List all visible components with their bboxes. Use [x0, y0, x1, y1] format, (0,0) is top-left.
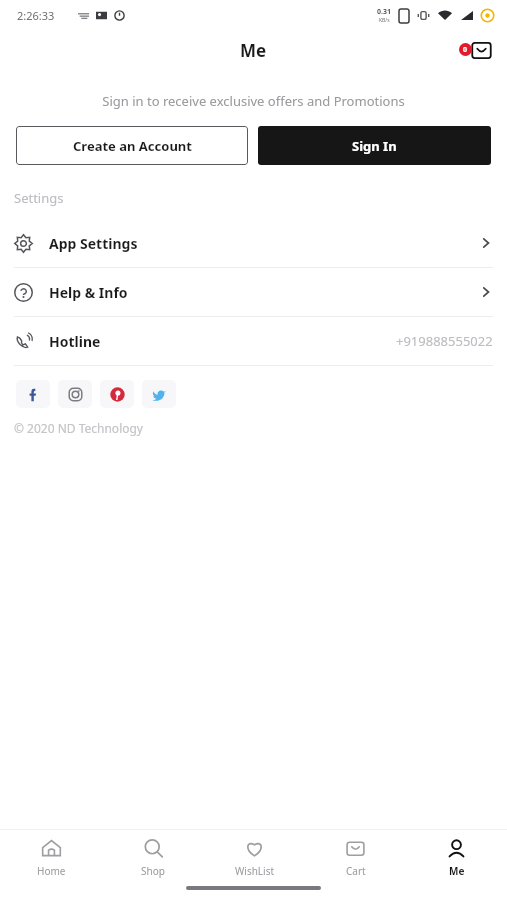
button[interactable]: Inbox [457, 31, 495, 69]
staticText: © 2020 ND Technology [14, 420, 143, 436]
button[interactable]: Facebook [16, 380, 50, 408]
staticText: WishList [235, 864, 275, 878]
staticText: Cart [346, 864, 366, 878]
staticText: Home [37, 864, 66, 878]
button[interactable]: Hotline [0, 317, 507, 365]
button[interactable]: Cart [305, 830, 406, 886]
staticText: 0.31 [377, 7, 391, 17]
button[interactable]: Twitter [142, 380, 176, 408]
staticText: Sign In [352, 137, 397, 155]
staticText: Sign in to receive exclusive offers and … [60, 92, 447, 110]
staticText: Help & Info [49, 283, 128, 302]
button[interactable]: Pinterest [100, 380, 134, 408]
button[interactable]: Create an Account [16, 126, 248, 165]
staticText: Me [449, 864, 465, 878]
staticText: 2:26:33 [17, 8, 55, 23]
staticText: Settings [14, 189, 64, 207]
staticText: 0 [463, 45, 468, 55]
staticText: Hotline [49, 332, 101, 351]
button[interactable]: Shop [102, 830, 204, 886]
staticText: Create an Account [73, 137, 192, 155]
button[interactable]: Home [0, 830, 102, 886]
staticText: KB/s [379, 17, 390, 24]
button[interactable]: Instagram [58, 380, 92, 408]
staticText: Me [240, 39, 267, 62]
staticText: App Settings [49, 234, 138, 253]
button[interactable]: WishList [204, 830, 305, 886]
button[interactable]: Me [406, 830, 507, 886]
staticText: Shop [141, 864, 165, 878]
button[interactable]: Sign In [258, 126, 491, 165]
button[interactable]: Help & Info [0, 268, 507, 316]
button[interactable]: App Settings [0, 219, 507, 267]
staticText: +919888555022 [396, 332, 493, 350]
